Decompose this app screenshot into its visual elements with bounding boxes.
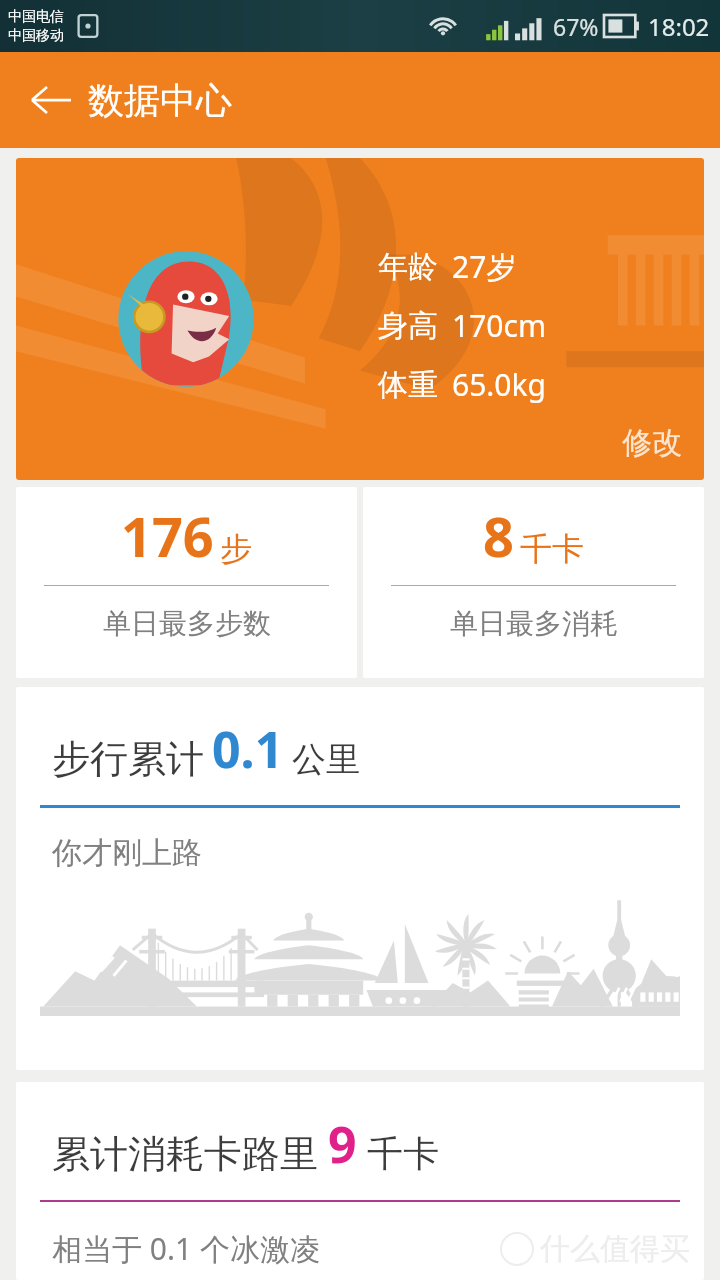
staticText: 单日最多步数 bbox=[103, 606, 271, 641]
staticText: 9 bbox=[328, 1110, 357, 1178]
staticText: 相当于 0.1 个冰激凌 bbox=[52, 1228, 320, 1269]
staticText: 0.1 bbox=[212, 715, 284, 783]
staticText: 年龄 bbox=[378, 248, 438, 286]
staticText: 中国电信 bbox=[8, 8, 64, 26]
button[interactable]: 年龄 bbox=[16, 158, 704, 480]
button[interactable]: 8 bbox=[363, 487, 704, 678]
staticText: 27岁 bbox=[452, 246, 517, 287]
staticText: 170cm bbox=[452, 305, 546, 346]
staticText: 步行累计 bbox=[52, 735, 204, 783]
button[interactable]: 累计消耗卡路里 bbox=[16, 1082, 704, 1280]
staticText: 千卡 bbox=[367, 1131, 439, 1176]
staticText: 身高 bbox=[378, 307, 438, 345]
staticText: 千卡 bbox=[520, 529, 584, 569]
staticText: 什么值得买 bbox=[540, 1230, 690, 1268]
staticText: 数据中心 bbox=[88, 78, 232, 123]
staticText: 你才刚上路 bbox=[52, 834, 202, 872]
staticText: 体重 bbox=[378, 366, 438, 404]
button[interactable]: 176 bbox=[16, 487, 357, 678]
staticText: 65.0kg bbox=[452, 364, 546, 405]
button[interactable]: Back bbox=[26, 75, 76, 125]
staticText: 中国移动 bbox=[8, 27, 64, 45]
staticText: 修改 bbox=[622, 424, 682, 462]
staticText: 176 bbox=[121, 499, 214, 573]
staticText: 公里 bbox=[292, 738, 360, 781]
staticText: 单日最多消耗 bbox=[450, 606, 618, 641]
button[interactable]: 修改 bbox=[622, 424, 682, 462]
staticText: 累计消耗卡路里 bbox=[52, 1130, 318, 1178]
button[interactable]: 步行累计 bbox=[16, 687, 704, 1070]
staticText: 18:02 bbox=[648, 10, 710, 43]
staticText: 步 bbox=[220, 529, 252, 569]
staticText: 8 bbox=[483, 499, 514, 573]
staticText: 67% bbox=[553, 11, 599, 42]
